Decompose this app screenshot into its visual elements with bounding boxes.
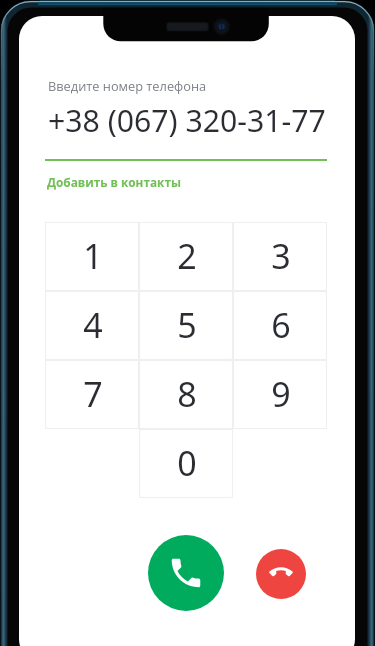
button[interactable]: 6 (233, 291, 327, 360)
button[interactable]: 3 (233, 222, 327, 291)
button[interactable]: 8 (139, 360, 233, 429)
staticText: 7 (83, 371, 103, 417)
staticText: +38 (067) 320-31-77 (48, 100, 326, 141)
staticText: 1 (83, 233, 103, 279)
staticText: Введите номер телефона (48, 77, 207, 94)
staticText: 4 (83, 302, 103, 348)
button[interactable]: 0 (139, 429, 233, 498)
button[interactable]: Добавить в контакты (47, 174, 181, 190)
button[interactable]: End call (256, 549, 306, 599)
button[interactable]: 1 (45, 222, 139, 291)
button[interactable]: 5 (139, 291, 233, 360)
staticText: 0 (177, 440, 197, 486)
staticText: 9 (271, 371, 291, 417)
button[interactable]: 7 (45, 360, 139, 429)
button[interactable]: 9 (233, 360, 327, 429)
staticText: 6 (271, 302, 291, 348)
staticText: Добавить в контакты (47, 174, 181, 190)
button[interactable]: Call (148, 535, 224, 611)
staticText: 3 (271, 233, 291, 279)
staticText: 5 (177, 302, 197, 348)
staticText: 2 (177, 233, 197, 279)
button[interactable]: 4 (45, 291, 139, 360)
staticText: 8 (177, 371, 197, 417)
button[interactable]: 2 (139, 222, 233, 291)
